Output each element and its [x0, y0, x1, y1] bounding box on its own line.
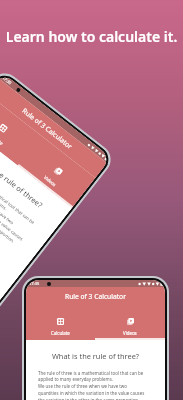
staticText: Calculate — [51, 330, 70, 336]
button[interactable]: Calculate — [0, 93, 41, 165]
staticText: Rule of 3 Calculator — [65, 292, 126, 301]
button[interactable]: Videos — [18, 136, 95, 208]
button[interactable]: Videos — [95, 305, 165, 340]
staticText: Learn how to calculate it. — [0, 27, 183, 46]
staticText: What is the rule of three? — [38, 351, 153, 361]
staticText: Rule of 3 Calculator — [20, 106, 74, 151]
staticText: Calculate — [0, 130, 5, 146]
staticText: Videos — [123, 330, 137, 336]
button[interactable]: Calculate — [26, 305, 95, 340]
staticText: What is the rule of three? — [0, 140, 55, 218]
staticText: The rule of three is a mathematical tool… — [38, 370, 145, 400]
staticText: 17:35 — [29, 281, 40, 286]
staticText: The rule of three is a mathematical tool… — [0, 156, 37, 248]
staticText: Videos — [43, 174, 57, 187]
staticText: 17:35 — [1, 75, 13, 86]
